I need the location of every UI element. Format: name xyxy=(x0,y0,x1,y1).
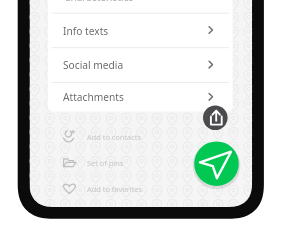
staticText: Add to favorites xyxy=(87,184,143,194)
button[interactable]: Share xyxy=(203,105,228,130)
staticText: Info texts xyxy=(63,24,109,38)
button[interactable]: Navigate xyxy=(195,142,239,186)
staticText: Add to contacts xyxy=(87,132,141,142)
staticText: Social media xyxy=(63,58,124,72)
staticText: Set of pins xyxy=(87,158,124,168)
button[interactable]: Social media xyxy=(48,47,233,82)
button[interactable]: Attachments xyxy=(48,82,233,112)
button[interactable]: Info texts xyxy=(48,13,233,48)
staticText: Attachments xyxy=(63,90,124,104)
